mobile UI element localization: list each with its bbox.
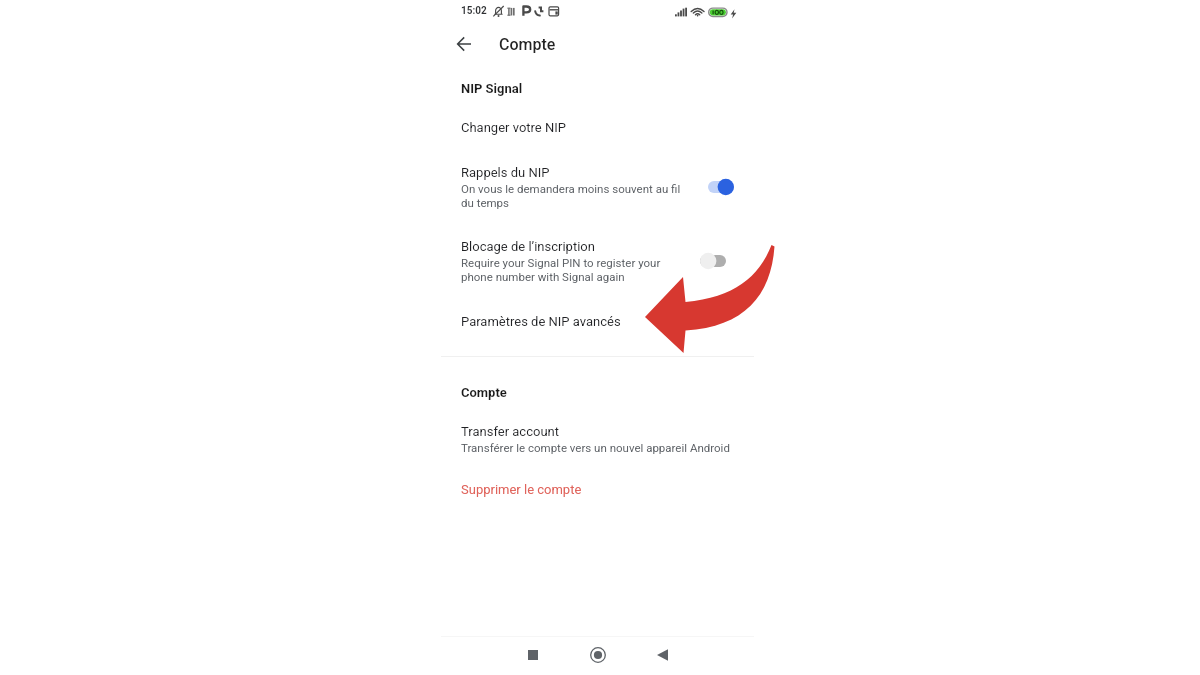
staticText: Paramètres de NIP avancés — [461, 314, 621, 329]
button[interactable]: Switch on — [706, 176, 734, 198]
staticText: On vous le demandera moins souvent au fi… — [461, 182, 683, 210]
staticText: Compte — [499, 35, 556, 54]
staticText: NIP Signal — [461, 81, 523, 96]
button[interactable]: Transfer account — [441, 414, 754, 460]
button[interactable]: Recent apps — [517, 639, 549, 671]
staticText: Blocage de l’inscription — [461, 239, 595, 254]
staticText: 15:02 — [461, 5, 487, 17]
button[interactable]: Home — [582, 639, 614, 671]
staticText: Supprimer le compte — [461, 482, 582, 497]
staticText: Rappels du NIP — [461, 165, 550, 180]
button[interactable]: Supprimer le compte — [441, 470, 754, 502]
button[interactable]: Back — [646, 639, 678, 671]
staticText: Changer votre NIP — [461, 120, 566, 135]
button[interactable]: Switch off — [700, 250, 728, 272]
button[interactable]: Paramètres de NIP avancés — [441, 302, 754, 334]
button[interactable]: Back — [449, 29, 479, 59]
button[interactable]: Rappels du NIP — [441, 152, 754, 214]
button[interactable]: Changer votre NIP — [441, 108, 754, 140]
button[interactable]: Blocage de l’inscription — [441, 228, 754, 290]
staticText: Transférer le compte vers un nouvel appa… — [461, 441, 730, 454]
staticText: Transfer account — [461, 424, 559, 439]
staticText: Compte — [461, 385, 507, 400]
staticText: Require your Signal PIN to register your… — [461, 256, 683, 284]
